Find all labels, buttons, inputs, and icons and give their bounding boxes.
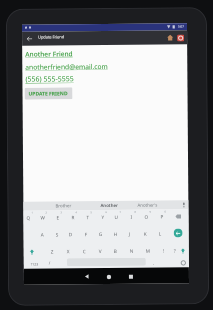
button[interactable]: I bbox=[125, 210, 137, 224]
staticText: 8 bbox=[134, 210, 136, 213]
staticText: 3 bbox=[60, 210, 62, 213]
staticText: M bbox=[146, 248, 151, 254]
button[interactable]: ! bbox=[158, 243, 170, 258]
button[interactable]: T bbox=[81, 210, 93, 224]
staticText: 6 bbox=[105, 210, 107, 213]
button[interactable] bbox=[174, 228, 183, 237]
staticText: C bbox=[83, 248, 86, 254]
button[interactable] bbox=[179, 258, 188, 266]
button[interactable]: H bbox=[110, 227, 122, 241]
button[interactable]: O bbox=[140, 210, 152, 224]
staticText: ? bbox=[174, 247, 177, 253]
button[interactable]: N bbox=[126, 244, 138, 258]
staticText: X bbox=[67, 248, 70, 254]
button[interactable]: K bbox=[139, 227, 151, 241]
button[interactable]: W bbox=[36, 210, 48, 225]
button[interactable]: UPDATE FRIEND bbox=[24, 87, 73, 100]
staticText: Brother bbox=[55, 202, 71, 208]
staticText: Another's bbox=[137, 202, 157, 208]
staticText: . bbox=[153, 260, 155, 266]
button[interactable]: ? bbox=[169, 243, 181, 257]
staticText: F bbox=[85, 231, 88, 237]
button[interactable] bbox=[25, 34, 34, 44]
staticText: 2 bbox=[45, 210, 47, 213]
button[interactable] bbox=[178, 245, 188, 255]
staticText: G bbox=[99, 231, 103, 237]
staticText: T bbox=[86, 214, 89, 220]
button[interactable]: E bbox=[51, 210, 63, 224]
staticText: ?123 bbox=[31, 261, 39, 267]
button[interactable]: Brother bbox=[53, 201, 72, 209]
button[interactable]: anotherfriend@email.com bbox=[25, 62, 108, 72]
staticText: S bbox=[56, 231, 59, 237]
button[interactable] bbox=[124, 270, 137, 283]
staticText: 4 bbox=[75, 210, 77, 213]
staticText: O bbox=[144, 214, 148, 220]
button[interactable]: Z bbox=[46, 244, 58, 258]
button[interactable] bbox=[102, 270, 115, 283]
button[interactable] bbox=[27, 247, 37, 257]
button[interactable]: Another's bbox=[135, 201, 158, 209]
button[interactable]: G bbox=[95, 227, 107, 241]
button[interactable]: V bbox=[94, 244, 106, 258]
button[interactable]: / bbox=[44, 256, 56, 270]
staticText: 5:07 bbox=[178, 24, 184, 28]
button[interactable]: . bbox=[148, 256, 160, 270]
staticText: 1 bbox=[31, 211, 33, 214]
button[interactable] bbox=[80, 270, 93, 283]
staticText: A bbox=[41, 231, 44, 237]
staticText: H bbox=[114, 231, 118, 237]
staticText: E bbox=[56, 214, 59, 220]
button[interactable]: F bbox=[80, 227, 92, 241]
staticText: Y bbox=[101, 214, 104, 220]
staticText: P bbox=[160, 214, 163, 220]
staticText: 5 bbox=[90, 210, 92, 213]
button[interactable]: R bbox=[66, 210, 78, 224]
button[interactable]: Y bbox=[96, 210, 108, 224]
button[interactable]: J bbox=[124, 227, 136, 241]
button[interactable]: X bbox=[62, 244, 74, 258]
button[interactable]: A bbox=[36, 227, 48, 242]
staticText: L bbox=[159, 231, 162, 237]
staticText: ! bbox=[163, 247, 165, 253]
button[interactable]: L bbox=[154, 226, 166, 241]
button[interactable]: P bbox=[155, 209, 167, 224]
button[interactable]: B bbox=[110, 244, 122, 258]
button[interactable]: Another bbox=[99, 201, 119, 209]
button[interactable]: M bbox=[142, 244, 154, 258]
staticText: Z bbox=[51, 248, 54, 254]
button[interactable]: Another Friend bbox=[25, 49, 73, 59]
staticText: Q bbox=[26, 215, 30, 221]
button[interactable]: U bbox=[110, 210, 122, 224]
staticText: I bbox=[130, 214, 132, 220]
staticText: 9 bbox=[149, 210, 151, 213]
staticText: D bbox=[69, 231, 73, 237]
button[interactable]: Q bbox=[22, 211, 34, 225]
staticText: U bbox=[114, 214, 118, 220]
staticText: B bbox=[114, 248, 118, 254]
staticText: R bbox=[71, 214, 74, 220]
staticText: UPDATE FRIEND bbox=[28, 90, 69, 98]
button[interactable]: D bbox=[65, 227, 77, 241]
button[interactable] bbox=[176, 33, 184, 41]
staticText: / bbox=[49, 260, 51, 266]
staticText: 0 bbox=[164, 209, 166, 212]
button[interactable] bbox=[171, 211, 184, 220]
button[interactable]: (556) 555-5555 bbox=[25, 74, 74, 85]
button[interactable] bbox=[180, 200, 186, 208]
button[interactable]: ?123 bbox=[28, 259, 42, 268]
staticText: W bbox=[40, 214, 45, 220]
staticText: Update Friend bbox=[38, 34, 64, 39]
button[interactable]: C bbox=[78, 244, 90, 258]
staticText: Another bbox=[100, 202, 118, 208]
button[interactable]: S bbox=[51, 227, 63, 241]
staticText: V bbox=[99, 248, 102, 254]
staticText: J bbox=[129, 231, 131, 237]
button[interactable] bbox=[166, 33, 174, 42]
staticText: 7 bbox=[119, 210, 121, 213]
staticText: K bbox=[144, 231, 147, 237]
staticText: N bbox=[130, 248, 134, 254]
